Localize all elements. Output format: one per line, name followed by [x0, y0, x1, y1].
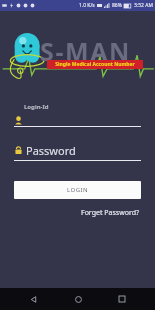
staticText: Forget Password?: [81, 208, 139, 218]
staticText: S-MAN: [40, 34, 131, 68]
staticText: Single Medical Account Number: [55, 61, 135, 68]
button[interactable]: Login Id: [14, 114, 141, 126]
staticText: Password: [26, 143, 76, 158]
button[interactable]: Back: [22, 288, 44, 310]
button[interactable]: Recent apps: [111, 288, 133, 310]
staticText: LOGIN: [67, 186, 89, 194]
staticText: 86%: [112, 2, 122, 9]
button[interactable]: LOGIN: [14, 181, 141, 199]
button[interactable]: Password: [14, 143, 141, 158]
button[interactable]: Forget Password?: [79, 206, 141, 220]
button[interactable]: Home: [67, 288, 89, 310]
other: Password: [14, 146, 23, 155]
staticText: 3:52 AM: [134, 2, 153, 9]
staticText: Login-Id: [24, 103, 49, 111]
staticText: 1.0 K/s: [79, 2, 95, 9]
other: Login Id: [14, 116, 23, 125]
